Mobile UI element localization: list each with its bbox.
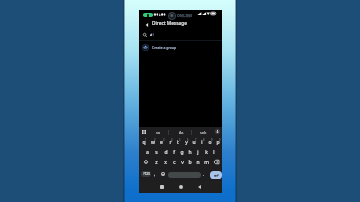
button[interactable]: c (170, 157, 178, 167)
staticText: 8 (203, 138, 205, 142)
staticText: q (142, 139, 146, 146)
button[interactable]: m (202, 157, 210, 167)
staticText: u (192, 139, 196, 146)
button[interactable]: w (148, 137, 157, 147)
staticText: ?123 (143, 172, 150, 176)
button[interactable]: Back (195, 183, 203, 191)
staticText: g (180, 149, 184, 156)
button[interactable]: d (161, 147, 170, 157)
button[interactable]: f (170, 147, 178, 157)
staticText: 4 (171, 138, 173, 142)
staticText: b (188, 159, 192, 166)
staticText: c (173, 159, 176, 166)
staticText: t (177, 139, 179, 146)
staticText: e (160, 139, 163, 146)
button[interactable]: q (139, 137, 148, 147)
staticText: r (169, 139, 172, 146)
button[interactable]: z (152, 157, 161, 167)
button[interactable]: , (152, 169, 157, 179)
button[interactable]: k (202, 147, 210, 157)
button[interactable]: ?123 (141, 171, 151, 177)
button[interactable] (139, 29, 222, 40)
staticText: ONLINE (177, 13, 193, 18)
button[interactable]: x (161, 157, 170, 167)
staticText: j (197, 149, 199, 156)
staticText: Direct Message (152, 20, 187, 26)
button[interactable]: Back (142, 20, 151, 29)
staticText: so (156, 130, 161, 135)
button[interactable]: i (198, 137, 206, 147)
button[interactable]: v (178, 157, 186, 167)
button[interactable]: Toolbar (140, 128, 148, 136)
button[interactable]: h (186, 147, 194, 157)
staticText: . (203, 171, 205, 177)
staticText: 9 (211, 138, 213, 142)
staticText: n (196, 159, 200, 166)
button[interactable]: Voice input (214, 128, 220, 134)
staticText: 2 (154, 138, 156, 142)
button[interactable]: y (182, 137, 190, 147)
button[interactable]: Backspace (210, 157, 222, 167)
button[interactable]: n (194, 157, 202, 167)
staticText: x (164, 159, 167, 166)
button[interactable]: Recents (158, 183, 166, 191)
staticText: h (188, 149, 192, 156)
staticText: 7 (195, 138, 197, 142)
button[interactable]: t (174, 137, 182, 147)
staticText: m (204, 159, 209, 166)
staticText: v (181, 159, 184, 166)
button[interactable]: g (178, 147, 186, 157)
staticText: TOP NEWS (181, 16, 192, 18)
button[interactable]: s (152, 147, 161, 157)
button[interactable]: Enter (210, 171, 222, 179)
staticText: w (151, 139, 155, 146)
staticText: z (155, 159, 158, 166)
staticText: 5 (179, 138, 181, 142)
button[interactable]: p (214, 137, 222, 147)
button[interactable]: Emoji (160, 171, 165, 176)
staticText: a (146, 149, 149, 156)
staticText: o (208, 139, 212, 146)
button[interactable]: Create a group (139, 41, 222, 53)
staticText: 3 (163, 138, 165, 142)
staticText: d (164, 149, 168, 156)
button[interactable]: Space (168, 172, 201, 178)
staticText: f (173, 149, 175, 156)
staticText: Create a group (152, 45, 177, 50)
button[interactable]: b (186, 157, 194, 167)
button[interactable]: l (210, 147, 218, 157)
staticText: 1 (145, 138, 147, 142)
staticText: 6 (187, 138, 189, 142)
staticText: 0 (219, 138, 221, 142)
button[interactable]: e (157, 137, 166, 147)
button[interactable]: j (194, 147, 202, 157)
staticText: y (185, 139, 188, 146)
button[interactable]: a (143, 147, 152, 157)
button[interactable]: o (206, 137, 214, 147)
button[interactable]: . (201, 169, 206, 179)
staticText: p (216, 139, 220, 146)
staticText: k (205, 149, 208, 156)
button[interactable]: u (190, 137, 198, 147)
staticText: s (155, 149, 158, 156)
staticText: sok (200, 130, 207, 135)
button[interactable]: Home (177, 183, 185, 191)
staticText: , (154, 171, 156, 177)
staticText: l (213, 149, 215, 156)
staticText: i (201, 139, 203, 146)
button[interactable]: Shift (139, 157, 152, 167)
staticText: As (179, 130, 184, 135)
button[interactable]: r (166, 137, 174, 147)
